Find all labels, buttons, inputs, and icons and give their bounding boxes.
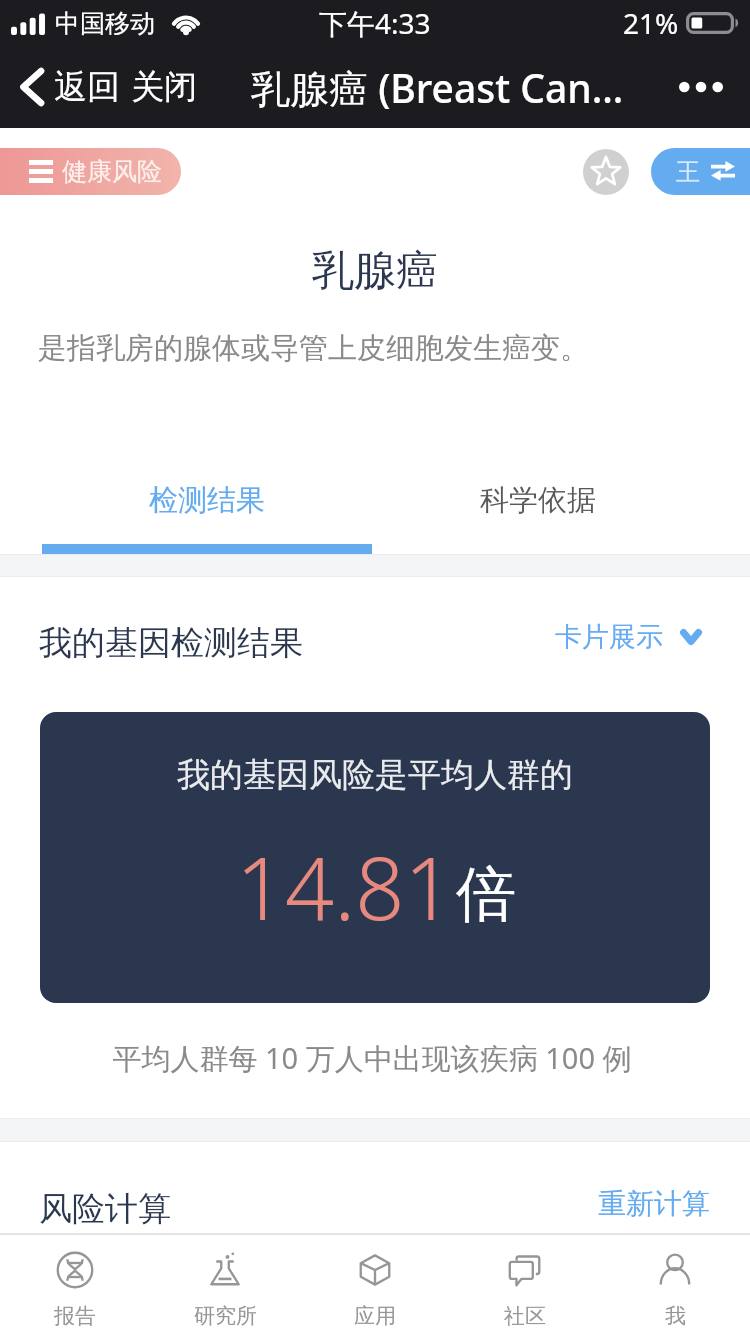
staticText: 是指乳房的腺体或导管上皮细胞发生癌变。 [38, 330, 589, 367]
staticText: 科学依据 [480, 482, 596, 519]
staticText: 王 [676, 157, 700, 187]
staticText: 关闭 [131, 66, 197, 108]
staticText: 我 [665, 1303, 686, 1329]
button[interactable]: 检测结果 [42, 462, 372, 554]
button[interactable]: 王 [651, 148, 750, 195]
staticText: 报告 [54, 1303, 96, 1329]
button[interactable]: 卡片展示 [555, 620, 702, 654]
button[interactable]: 应用 [300, 1235, 450, 1334]
button[interactable]: 健康风险 [0, 148, 181, 195]
button[interactable]: 关闭 [131, 56, 197, 118]
staticText: 下午4:33 [319, 4, 431, 42]
staticText: 研究所 [194, 1303, 257, 1329]
staticText: 我的基因检测结果 [39, 622, 303, 664]
button[interactable]: 报告 [0, 1235, 150, 1334]
button[interactable]: Favorite [583, 149, 629, 195]
staticText: 返回 [54, 66, 120, 108]
staticText: 倍 [456, 857, 516, 933]
button[interactable]: More options [669, 57, 733, 117]
staticText: 平均人群每 10 万人中出现该疾病 100 例 [0, 1038, 747, 1078]
staticText: 重新计算 [598, 1186, 710, 1221]
button[interactable]: 我的基因风险是平均人群的 [40, 712, 710, 1003]
button[interactable]: 科学依据 [373, 462, 703, 554]
staticText: 中国移动 [55, 8, 155, 39]
button[interactable]: 我 [600, 1235, 750, 1334]
staticText: 健康风险 [62, 156, 162, 187]
button[interactable]: 社区 [450, 1235, 600, 1334]
staticText: 社区 [504, 1303, 546, 1329]
button[interactable]: 返回 [20, 56, 120, 118]
staticText: 应用 [354, 1303, 396, 1329]
staticText: 卡片展示 [555, 620, 663, 654]
staticText: 风险计算 [39, 1188, 171, 1230]
staticText: 14.81 [236, 828, 454, 945]
staticText: 乳腺癌 [0, 245, 750, 298]
staticText: 我的基因风险是平均人群的 [40, 754, 710, 796]
staticText: 检测结果 [149, 482, 265, 519]
button[interactable]: 重新计算 [598, 1186, 710, 1221]
staticText: 21% [623, 4, 679, 42]
button[interactable]: 研究所 [150, 1235, 300, 1334]
staticText: 乳腺癌 (Breast Can… [251, 61, 624, 114]
